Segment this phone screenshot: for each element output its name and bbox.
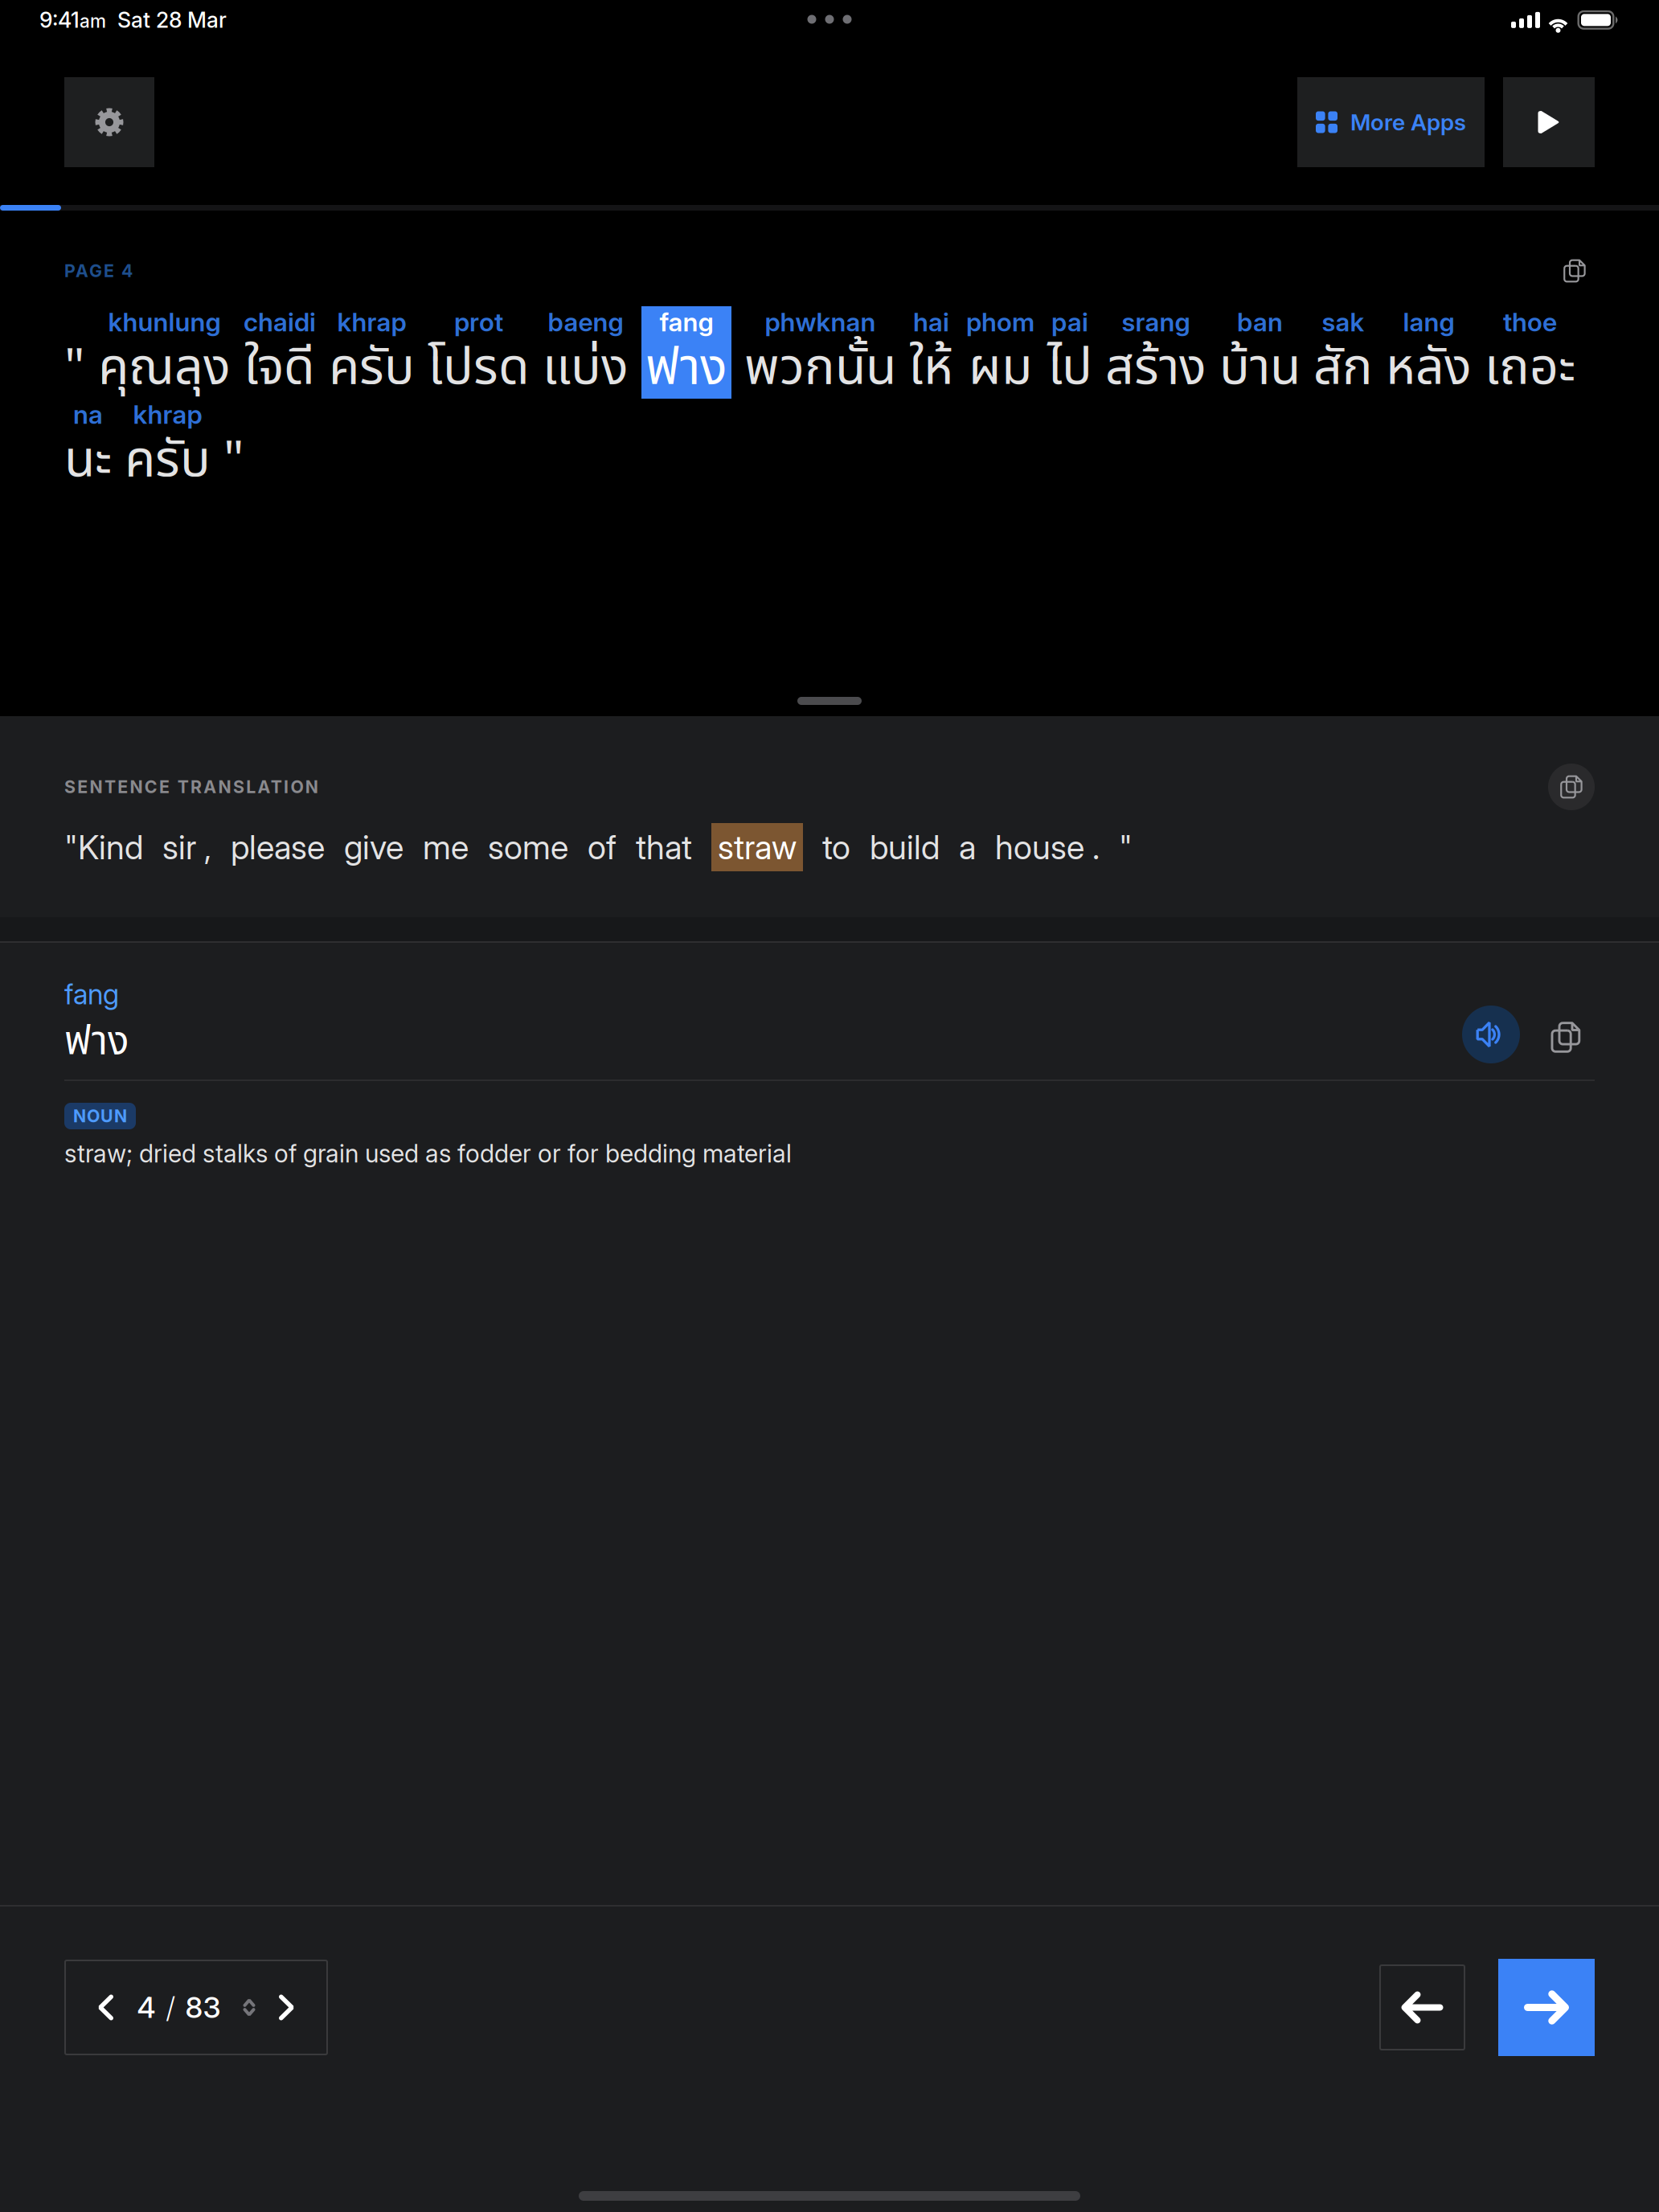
staticText: sak — [1322, 306, 1364, 337]
staticText: ฟาง — [645, 330, 727, 406]
staticText: build — [870, 827, 940, 867]
staticText: lang — [1403, 306, 1454, 337]
staticText: khrap — [337, 306, 406, 337]
staticText: baeng — [548, 306, 623, 337]
button[interactable]: thoe — [1485, 306, 1575, 399]
staticText: นะ — [64, 423, 112, 499]
button[interactable]: Settings — [64, 77, 154, 167]
staticText: straw; dried stalks of grain used as fod… — [64, 1138, 792, 1168]
button[interactable]: baeng — [543, 306, 629, 399]
staticText: to — [822, 827, 850, 867]
staticText: sir , — [162, 827, 211, 867]
staticText: " — [64, 330, 85, 406]
staticText: โปรด — [428, 330, 530, 406]
staticText: srang — [1122, 306, 1190, 337]
staticText: some — [488, 827, 568, 867]
staticText: / — [166, 1990, 175, 2025]
staticText: ครับ — [329, 330, 415, 406]
staticText: หลัง — [1386, 330, 1472, 406]
staticText: fang — [64, 977, 119, 1011]
button[interactable]: prot — [428, 306, 530, 399]
button[interactable]: sak — [1313, 306, 1373, 399]
button[interactable]: Copy sentence — [1555, 251, 1595, 291]
staticText: สัก — [1313, 330, 1373, 406]
staticText: เถอะ — [1485, 330, 1575, 406]
staticText: บ้าน — [1219, 330, 1301, 406]
staticText: SENTENCE TRANSLATION — [64, 777, 318, 797]
button[interactable]: chaidi — [244, 306, 316, 399]
button[interactable]: khunlung — [98, 306, 231, 399]
staticText: na — [73, 399, 103, 430]
button[interactable]: srang — [1105, 306, 1206, 399]
staticText: give — [344, 827, 403, 867]
staticText: PAGE 4 — [64, 261, 133, 281]
staticText: แบ่ง — [543, 330, 629, 406]
staticText: a — [959, 827, 976, 867]
staticText: ครับ — [125, 423, 211, 499]
button[interactable]: Copy word — [1546, 1017, 1586, 1057]
staticText: thoe — [1503, 306, 1557, 337]
staticText: hai — [913, 306, 949, 337]
staticText: สร้าง — [1105, 330, 1206, 406]
staticText: ฟาง — [64, 1012, 129, 1072]
staticText: house . — [995, 827, 1100, 867]
staticText: More Apps — [1350, 109, 1466, 136]
button[interactable]: fang — [641, 306, 731, 399]
button[interactable]: lang — [1386, 306, 1472, 399]
staticText: ผม — [969, 330, 1032, 406]
staticText: me — [423, 827, 469, 867]
staticText: am — [80, 10, 106, 32]
button[interactable]: na — [64, 399, 112, 491]
staticText: " — [223, 423, 244, 499]
button[interactable]: More Apps — [1297, 77, 1485, 167]
staticText: " — [1119, 827, 1133, 867]
staticText: phwknan — [765, 306, 876, 337]
staticText: that — [636, 827, 692, 867]
staticText: ใจดี — [244, 330, 315, 406]
staticText: pai — [1051, 306, 1088, 337]
button[interactable]: Pronounce — [1462, 1006, 1520, 1063]
staticText: chaidi — [244, 306, 316, 337]
button[interactable]: Previous page — [74, 1961, 137, 2054]
staticText: "Kind — [64, 827, 143, 867]
button[interactable]: pai — [1047, 306, 1092, 399]
button[interactable]: khrap — [125, 399, 211, 491]
button[interactable]: hai — [909, 306, 953, 399]
staticText: พวกนั้น — [744, 330, 896, 406]
staticText: ban — [1237, 306, 1283, 337]
staticText: khrap — [133, 399, 202, 430]
staticText: of — [588, 827, 616, 867]
button[interactable]: ban — [1219, 306, 1301, 399]
staticText: fang — [660, 306, 713, 337]
staticText: Sat 28 Mar — [106, 7, 227, 33]
staticText: ให้ — [909, 330, 953, 406]
staticText: NOUN — [73, 1106, 127, 1126]
staticText: prot — [454, 306, 503, 337]
staticText: straw — [718, 827, 797, 867]
staticText: 9:41 — [39, 7, 80, 33]
button[interactable]: phom — [966, 306, 1034, 399]
button[interactable]: phwknan — [744, 306, 896, 399]
button[interactable]: Copy translation — [1548, 764, 1595, 810]
button[interactable]: khrap — [329, 306, 415, 399]
button[interactable]: Back — [1379, 1964, 1465, 2050]
button[interactable]: Forward — [1498, 1959, 1595, 2056]
staticText: please — [231, 827, 325, 867]
button[interactable]: Play — [1503, 77, 1595, 167]
staticText: 4 — [137, 1990, 156, 2025]
staticText: คุณลุง — [98, 330, 231, 406]
staticText: khunlung — [108, 306, 221, 337]
staticText: 83 — [185, 1990, 221, 2025]
staticText: ไป — [1047, 330, 1092, 406]
staticText: phom — [966, 306, 1034, 337]
button[interactable]: Next page — [255, 1961, 318, 2054]
